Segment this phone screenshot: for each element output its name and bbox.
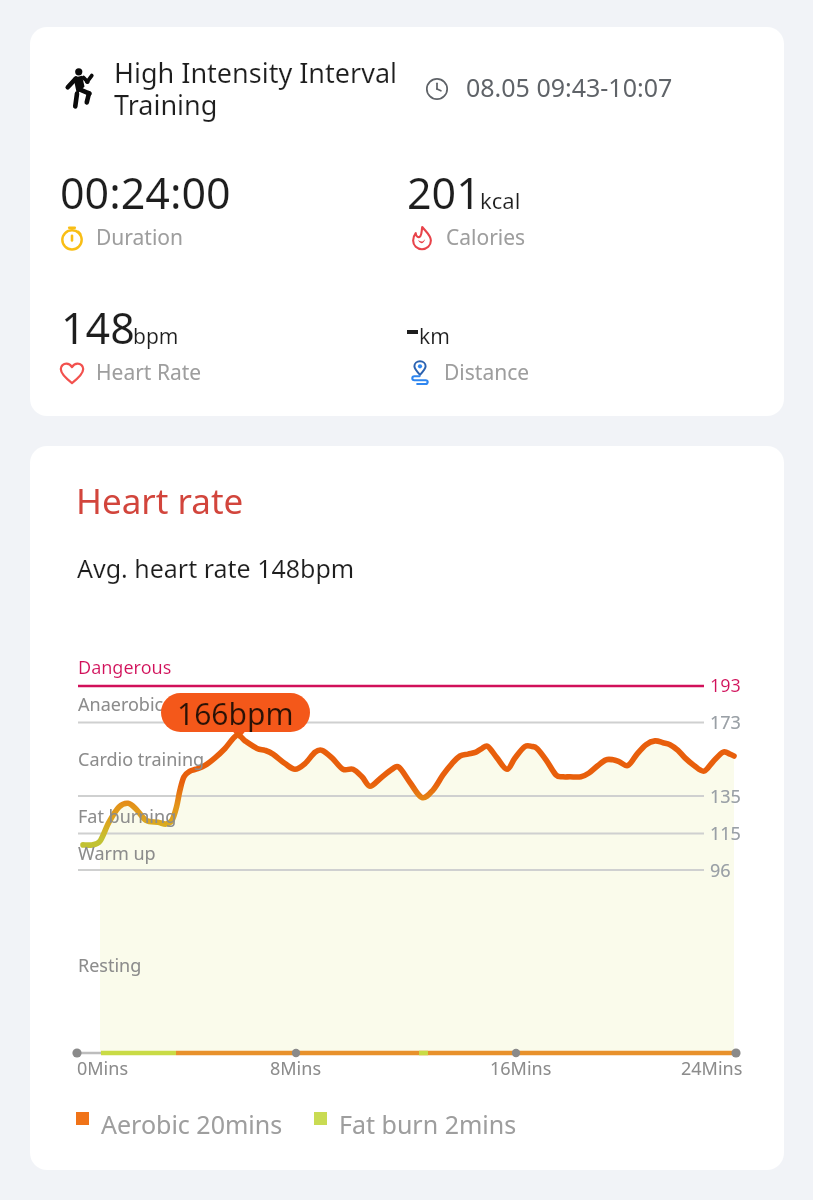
staticText: High Intensity Interval: [114, 54, 398, 91]
staticText: Duration: [96, 223, 184, 252]
staticText: Avg. heart rate 148bpm: [77, 551, 355, 585]
staticText: Heart Rate: [96, 358, 202, 387]
staticText: bpm: [133, 322, 179, 351]
button[interactable]: Workout type: [30, 27, 784, 416]
staticText: 173: [710, 710, 741, 735]
staticText: Aerobic 20mins: [101, 1107, 283, 1141]
staticText: Dangerous: [78, 655, 172, 680]
staticText: km: [419, 322, 450, 351]
staticText: 8Mins: [270, 1056, 322, 1081]
staticText: 96: [710, 858, 731, 883]
staticText: 00:24:00: [60, 163, 231, 222]
staticText: Anaerobic: [78, 692, 164, 717]
staticText: Cardio training: [78, 747, 205, 772]
staticText: 193: [710, 673, 741, 698]
staticText: 24Mins: [681, 1056, 743, 1081]
other: Time: [424, 76, 450, 102]
staticText: 135: [710, 784, 741, 809]
staticText: Warm up: [78, 841, 156, 866]
staticText: Heart rate: [76, 477, 244, 525]
staticText: 16Mins: [490, 1056, 552, 1081]
staticText: Fat burn 2mins: [339, 1107, 517, 1141]
staticText: 115: [710, 821, 741, 846]
staticText: 0Mins: [77, 1056, 129, 1081]
button[interactable]: 166bpm: [161, 693, 310, 732]
staticText: 201: [407, 163, 481, 222]
staticText: 148: [61, 298, 135, 357]
staticText: Distance: [444, 358, 530, 387]
staticText: kcal: [480, 185, 521, 215]
staticText: Training: [114, 86, 218, 123]
other: Workout type: [67, 68, 92, 108]
staticText: 166bpm: [177, 693, 294, 732]
staticText: Calories: [446, 223, 526, 252]
staticText: Fat burning: [78, 804, 177, 829]
staticText: 08.05 09:43-10:07: [466, 70, 673, 104]
staticText: Resting: [78, 953, 142, 978]
